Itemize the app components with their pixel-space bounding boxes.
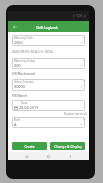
staticText: 28.04.2019 [19, 105, 39, 110]
button[interactable]: Morning Group [12, 58, 85, 69]
button[interactable]: Home [45, 153, 52, 160]
staticText: Shift Logbook [36, 25, 58, 29]
staticText: BASED WHEN INDIA (+9) / INDIA [12, 50, 53, 54]
button[interactable]: Create [12, 142, 47, 150]
staticText: Morning Pack [14, 36, 33, 40]
staticText: * [83, 80, 85, 84]
button[interactable]: Morning Pack [12, 35, 85, 46]
staticText: HB March [12, 93, 28, 97]
staticText: * [83, 59, 85, 63]
staticText: 90000 [14, 84, 25, 89]
staticText: 2650 [14, 40, 23, 45]
staticText: Date [21, 101, 28, 105]
staticText: Shift [14, 118, 21, 122]
button[interactable]: Select Counter [12, 79, 85, 91]
staticText: Number has to all [64, 112, 87, 116]
staticText: A [14, 122, 17, 127]
button[interactable]: Shift [12, 117, 85, 128]
button[interactable]: Back [10, 21, 19, 32]
staticText: 100% [76, 14, 83, 18]
button[interactable]: Change & Display [50, 142, 85, 150]
staticText: 900 [14, 63, 21, 68]
staticText: Morning Group [14, 59, 35, 63]
staticText: Create [24, 144, 35, 148]
staticText: Select Counter [14, 80, 34, 84]
button[interactable]: Date [12, 100, 85, 111]
staticText: HB Mechanical [12, 71, 35, 75]
button[interactable]: Back [67, 153, 74, 160]
button[interactable]: Recents [23, 153, 30, 160]
staticText: Change & Display [54, 144, 82, 148]
staticText: * [83, 36, 85, 40]
staticText: * [83, 118, 85, 122]
